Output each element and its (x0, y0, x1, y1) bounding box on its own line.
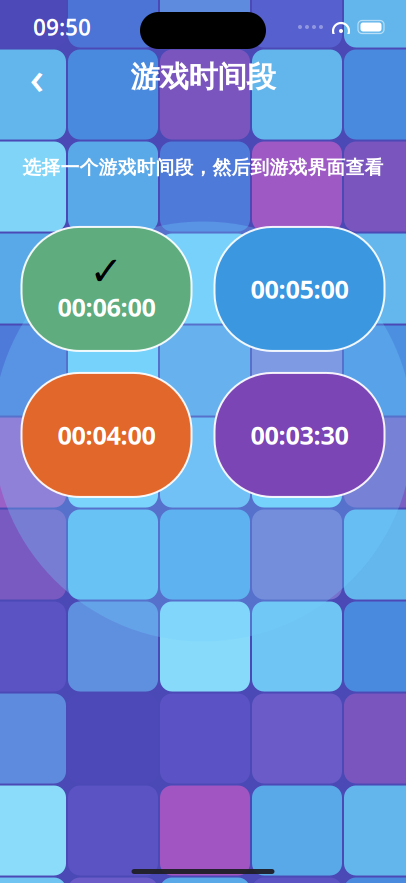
staticText: 游戏时间段 (130, 59, 275, 95)
staticText: ‹ (29, 47, 44, 107)
button[interactable]: 00:04:00 (21, 373, 191, 497)
button[interactable]: ✓ (21, 227, 191, 351)
staticText: 选择一个游戏时间段，然后到游戏界面查看 (22, 156, 383, 179)
staticText: ✓ (89, 248, 123, 294)
staticText: 00:05:00 (250, 272, 348, 306)
button[interactable]: 00:05:00 (214, 227, 384, 351)
button[interactable]: 00:03:30 (214, 373, 384, 497)
button[interactable]: Back (15, 55, 59, 99)
staticText: 09:50 (33, 12, 91, 42)
staticText: 00:03:30 (250, 418, 348, 452)
staticText: 00:06:00 (57, 290, 155, 324)
staticText: 00:04:00 (57, 418, 155, 452)
